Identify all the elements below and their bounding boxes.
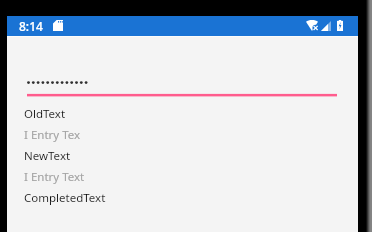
button[interactable]: NewText — [7, 145, 358, 166]
staticText: I Entry Tex — [24, 127, 81, 143]
staticText: NewText — [24, 148, 71, 164]
button[interactable]: I Entry Tex — [7, 124, 358, 145]
button[interactable]: OldText — [7, 103, 358, 124]
other: Battery charging — [337, 20, 343, 31]
other: Mobile signal — [321, 21, 331, 31]
other: Storage — [53, 20, 63, 31]
staticText: OldText — [24, 106, 66, 122]
other: Wi-Fi, no internet — [306, 20, 318, 31]
staticText: CompletedText — [24, 190, 106, 206]
button[interactable]: Password — [7, 74, 358, 98]
staticText: 8:14 — [19, 18, 43, 34]
staticText: I Entry Text — [24, 169, 85, 185]
button[interactable]: I Entry Text — [7, 166, 358, 187]
button[interactable]: CompletedText — [7, 187, 358, 208]
